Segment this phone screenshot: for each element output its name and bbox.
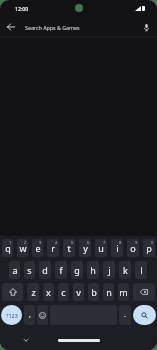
button[interactable]: ?123 [1,305,22,325]
staticText: v [76,286,81,298]
staticText: q [5,242,11,254]
staticText: 12:00 [15,5,29,12]
staticText: w [19,242,27,254]
button[interactable]: Voice search [137,18,155,36]
button[interactable]: e [32,239,43,257]
staticText: x [46,286,51,298]
staticText: 3 [39,240,42,245]
button[interactable]: f [55,261,67,279]
staticText: 9 [135,240,138,245]
button[interactable]: x [43,283,54,301]
staticText: t [67,242,71,254]
button[interactable]: n [103,283,114,301]
staticText: u [98,242,104,254]
staticText: 5 [71,240,74,245]
button[interactable]: p [143,239,155,257]
button[interactable]: Shift [2,283,23,301]
button[interactable]: d [39,261,51,279]
staticText: e [35,242,41,254]
staticText: 4 [55,240,58,245]
button[interactable]: y [79,239,91,257]
button[interactable]: b [88,283,99,301]
button[interactable]: a [9,261,20,279]
button[interactable]: v [73,283,84,301]
button[interactable]: c [58,283,69,301]
staticText: o [130,242,136,254]
staticText: y [83,242,88,254]
staticText: z [31,286,36,298]
button[interactable]: u [95,239,107,257]
button[interactable]: Back [2,18,20,36]
button[interactable]: s [24,261,35,279]
staticText: 6 [87,240,90,245]
staticText: s [27,264,32,276]
staticText: b [91,286,97,298]
staticText: 1 [9,240,12,245]
button[interactable]: w [17,239,28,257]
button[interactable]: , [24,305,35,325]
button[interactable]: j [103,261,115,279]
staticText: k [123,264,128,276]
staticText: c [61,286,66,298]
staticText: h [90,264,96,276]
staticText: ?123 [6,312,18,319]
button[interactable]: q [2,239,13,257]
button[interactable]: g [71,261,83,279]
button[interactable]: i [111,239,123,257]
staticText: , [29,310,31,320]
button[interactable]: . [119,305,131,325]
staticText: 7 [103,240,106,245]
button[interactable]: Hide keyboard [22,336,30,344]
staticText: d [42,264,48,276]
staticText: . [124,310,126,320]
staticText: p [146,242,152,254]
button[interactable]: z [27,283,39,301]
staticText: l [140,264,143,276]
button[interactable]: o [127,239,139,257]
button[interactable]: Backspace [133,283,155,301]
button[interactable]: Search [133,305,156,325]
button[interactable]: t [63,239,75,257]
staticText: r [51,242,55,254]
staticText: 2 [24,240,27,245]
button[interactable]: l [135,261,147,279]
staticText: f [59,264,63,276]
staticText: 0 [151,240,154,245]
staticText: 8 [119,240,122,245]
staticText: m [119,286,128,298]
staticText: j [108,264,111,276]
button[interactable]: h [87,261,99,279]
staticText: n [106,286,112,298]
button[interactable]: Emoji [37,305,48,325]
staticText: a [12,264,18,276]
button[interactable]: m [118,283,129,301]
staticText: Search Apps & Games [25,24,80,31]
staticText: i [116,242,119,254]
staticText: g [74,264,80,276]
button[interactable]: r [47,239,59,257]
button[interactable]: k [119,261,131,279]
